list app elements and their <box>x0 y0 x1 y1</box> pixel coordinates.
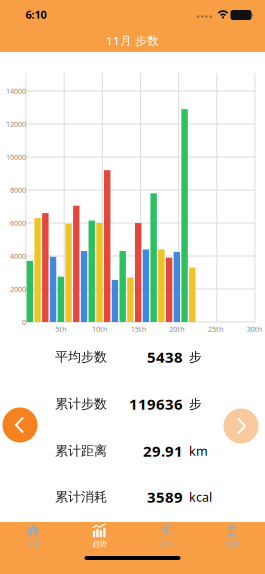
staticText: 4000 <box>10 251 26 261</box>
staticText: 累计消耗 <box>55 489 107 505</box>
staticText: 2000 <box>10 284 26 294</box>
staticText: 25th <box>208 324 223 334</box>
button[interactable]: 我的 <box>199 519 265 553</box>
button[interactable]: 首页 <box>0 519 66 553</box>
staticText: 步 <box>189 396 202 412</box>
staticText: 8000 <box>10 185 26 195</box>
staticText: 步 <box>189 349 202 365</box>
staticText: 累计距离 <box>55 443 107 459</box>
button[interactable] <box>223 408 258 443</box>
staticText: 0 <box>22 317 26 327</box>
staticText: 29.91 <box>143 441 183 461</box>
staticText: 30th <box>247 324 262 334</box>
staticText: 14000 <box>6 86 26 96</box>
staticText: km <box>189 442 208 460</box>
staticText: 运动 <box>159 539 173 549</box>
staticText: 3589 <box>147 487 183 507</box>
staticText: 119636 <box>129 394 183 414</box>
staticText: 15th <box>131 324 146 334</box>
staticText: 首页 <box>26 539 40 549</box>
staticText: 6000 <box>10 218 26 228</box>
staticText: kcal <box>189 488 212 506</box>
button[interactable] <box>2 407 37 442</box>
staticText: 20th <box>169 324 184 334</box>
staticText: 5th <box>55 324 66 334</box>
staticText: 12000 <box>6 119 26 129</box>
button[interactable]: 运动 <box>132 519 199 553</box>
staticText: 趋势 <box>92 539 106 549</box>
staticText: 5438 <box>147 347 183 367</box>
staticText: 11月 步数 <box>106 33 159 48</box>
staticText: 我的 <box>225 539 239 549</box>
staticText: 累计步数 <box>55 396 107 412</box>
staticText: 6:10 <box>25 7 46 22</box>
staticText: 10000 <box>6 152 26 162</box>
button[interactable]: 趋势 <box>66 519 132 553</box>
staticText: 平均步数 <box>55 349 107 365</box>
staticText: 10th <box>92 324 107 334</box>
